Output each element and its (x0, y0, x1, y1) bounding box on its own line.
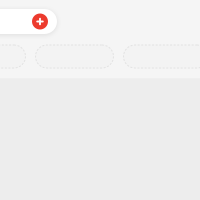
button[interactable]: Add (0, 9, 57, 34)
